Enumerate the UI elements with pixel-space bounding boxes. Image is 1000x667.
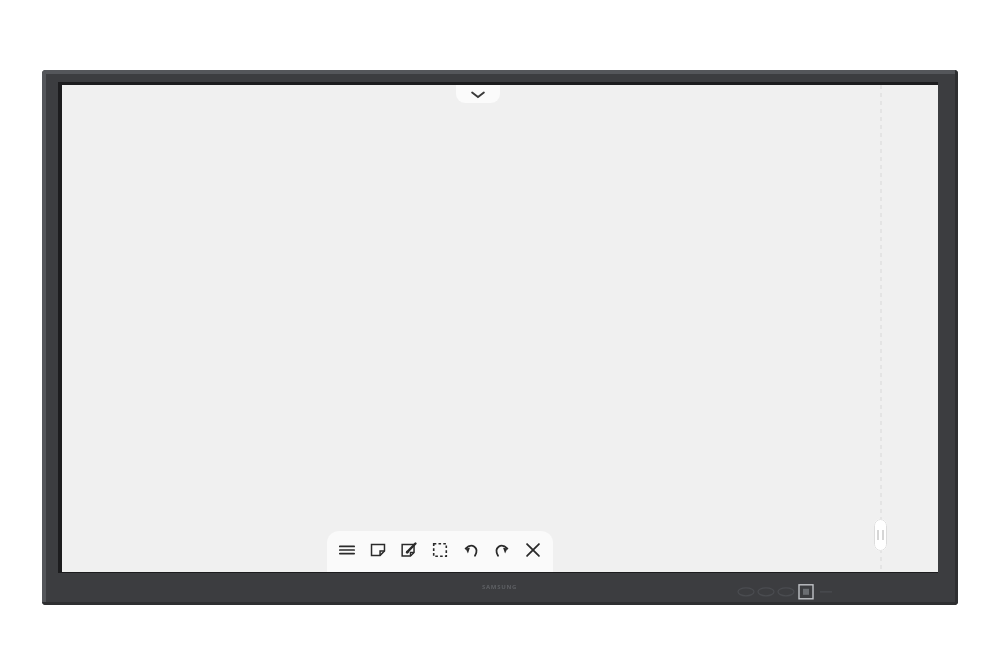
button[interactable]: Scroll handle (874, 519, 887, 551)
button[interactable]: Menu (338, 541, 356, 559)
button[interactable]: Select area (431, 541, 449, 559)
button[interactable]: Close (524, 541, 542, 559)
button[interactable]: Edit note (400, 541, 418, 559)
button[interactable]: Undo (462, 541, 480, 559)
button[interactable]: Redo (493, 541, 511, 559)
staticText: SAMSUNG (482, 583, 518, 591)
button[interactable]: Expand menu (456, 85, 500, 103)
button[interactable]: Note (369, 541, 387, 559)
